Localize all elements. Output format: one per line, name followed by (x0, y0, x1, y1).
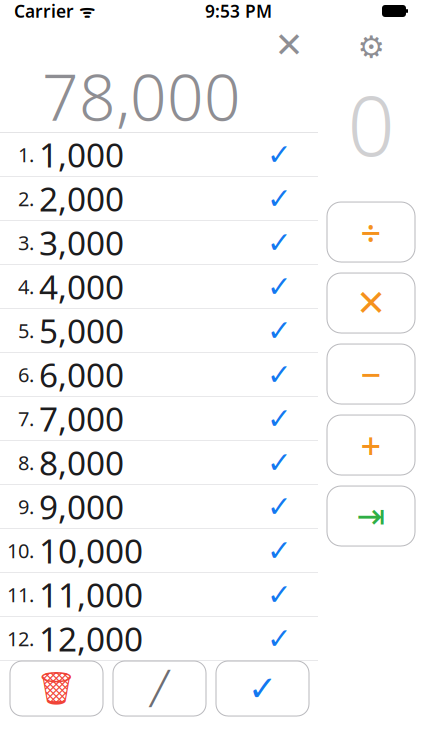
staticText: 4,000 (39, 264, 124, 309)
staticText: 2,000 (39, 176, 124, 221)
staticText: 9. (18, 493, 34, 520)
staticText: 2. (18, 185, 34, 212)
button[interactable]: 7. (0, 397, 318, 441)
staticText: ✕ (274, 25, 303, 65)
button[interactable]: Settings (349, 30, 393, 64)
staticText: 8. (18, 449, 34, 476)
staticText: ✓ (267, 446, 292, 479)
staticText: 4. (18, 273, 34, 300)
button[interactable]: Delete (10, 661, 103, 716)
button[interactable]: 10. (0, 529, 318, 573)
button[interactable]: Divide (327, 202, 415, 262)
staticText: ⇥ (356, 496, 385, 536)
button[interactable]: 4. (0, 265, 318, 309)
button[interactable]: Multiply (327, 273, 415, 333)
staticText: + (360, 421, 381, 469)
staticText: ✓ (267, 182, 292, 215)
staticText: ✓ (267, 314, 292, 347)
button[interactable]: 2. (0, 177, 318, 221)
button[interactable]: 8. (0, 441, 318, 485)
staticText: 3. (18, 229, 34, 256)
staticText: 7. (18, 405, 34, 432)
staticText: 5,000 (39, 308, 124, 353)
staticText: 7,000 (39, 396, 124, 441)
button[interactable]: 12. (0, 617, 318, 661)
staticText: 11. (7, 581, 34, 608)
button[interactable]: 1. (0, 133, 318, 177)
staticText: ✓ (267, 402, 292, 435)
staticText: 10. (7, 537, 34, 564)
button[interactable]: 6. (0, 353, 318, 397)
button[interactable]: 11. (0, 573, 318, 617)
staticText: 🗑 (36, 670, 77, 707)
button[interactable]: 3. (0, 221, 318, 265)
button[interactable]: Edit (113, 661, 206, 716)
staticText: ✓ (267, 226, 292, 259)
staticText: ÷ (360, 208, 381, 256)
button[interactable]: Export (327, 486, 415, 546)
staticText: ᯤ (74, 0, 95, 22)
staticText: ✓ (267, 578, 292, 611)
staticText: 3,000 (39, 220, 124, 265)
staticText: 1,000 (39, 132, 124, 177)
button[interactable]: Subtract (327, 344, 415, 404)
staticText: ✓ (267, 622, 292, 655)
staticText: − (360, 350, 381, 398)
staticText: ✓ (267, 534, 292, 567)
staticText: ✓ (248, 669, 277, 708)
staticText: 9:53 PM (205, 0, 272, 22)
staticText: 6,000 (39, 352, 124, 397)
staticText: ✕ (356, 283, 386, 323)
staticText: ✓ (267, 270, 292, 303)
staticText: 10,000 (39, 528, 143, 573)
staticText: Carrier (14, 0, 74, 22)
staticText: 5. (18, 317, 34, 344)
button[interactable]: Close (262, 23, 316, 67)
button[interactable]: Confirm (216, 661, 309, 716)
staticText: ⚙ (357, 30, 384, 64)
staticText: ✓ (267, 358, 292, 391)
staticText: 6. (18, 361, 34, 388)
staticText: 11,000 (39, 572, 143, 617)
staticText: ✓ (267, 138, 292, 171)
button[interactable]: Add (327, 415, 415, 475)
button[interactable]: 9. (0, 485, 318, 529)
staticText: 9,000 (39, 484, 124, 529)
staticText: 12,000 (39, 616, 143, 661)
staticText: 12. (7, 625, 34, 652)
staticText: ✓ (267, 490, 292, 523)
staticText: 0 (347, 69, 394, 179)
staticText: 78,000 (42, 53, 241, 138)
button[interactable]: 5. (0, 309, 318, 353)
staticText: 8,000 (39, 440, 124, 485)
staticText: ╱ (150, 670, 169, 707)
staticText: 1. (18, 141, 34, 168)
